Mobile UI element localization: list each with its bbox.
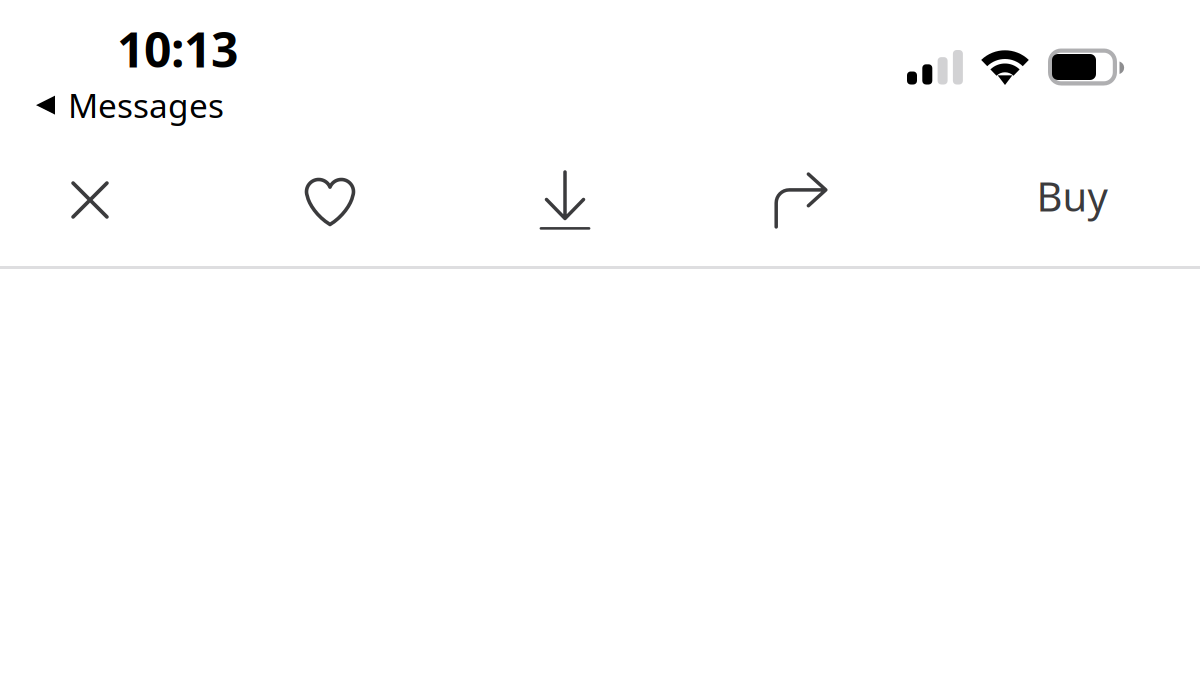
button[interactable]: Buy <box>1012 141 1132 251</box>
button[interactable]: Close <box>30 145 150 255</box>
staticText: Buy <box>1036 169 1107 222</box>
staticText: Messages <box>68 83 224 127</box>
button[interactable]: Share <box>741 145 861 255</box>
button[interactable]: Favorite <box>270 147 390 257</box>
button[interactable]: Messages <box>0 77 242 133</box>
button[interactable]: Download <box>505 145 625 255</box>
staticText: 10:13 <box>117 17 238 81</box>
